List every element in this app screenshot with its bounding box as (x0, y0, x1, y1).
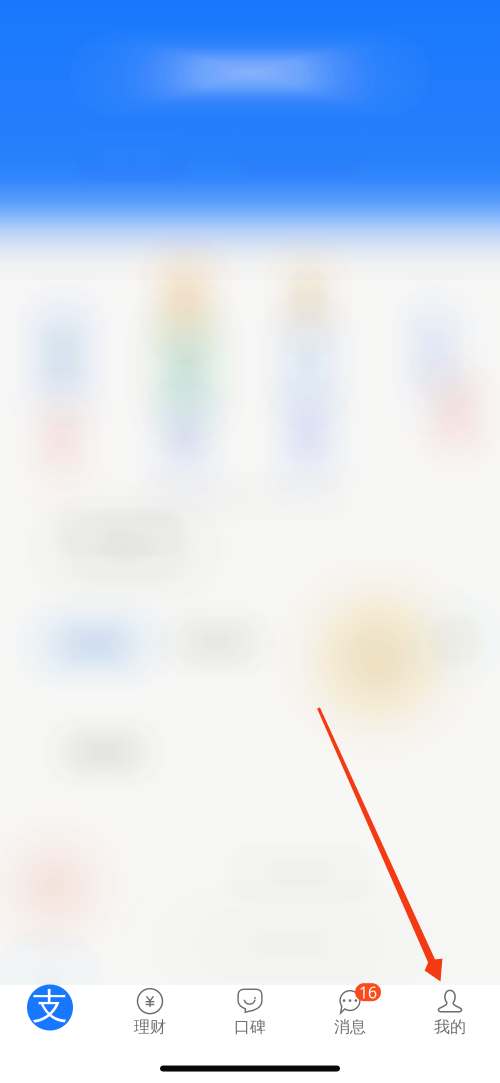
button[interactable]: 16 (300, 987, 400, 1035)
staticText: Baidu 经验 (334, 1016, 466, 1052)
button[interactable]: 口碑 (200, 987, 300, 1035)
staticText: 口碑 (234, 1017, 266, 1037)
button[interactable]: 首页 (0, 986, 100, 1036)
staticText: 理财 (134, 1017, 166, 1037)
staticText: 支 (32, 984, 68, 1029)
button[interactable]: 理财 (100, 987, 200, 1035)
staticText: 16 (359, 981, 377, 1003)
staticText: 我的 (434, 1017, 466, 1037)
staticText: 消息 (334, 1017, 366, 1037)
button[interactable]: 我的 (400, 987, 500, 1035)
